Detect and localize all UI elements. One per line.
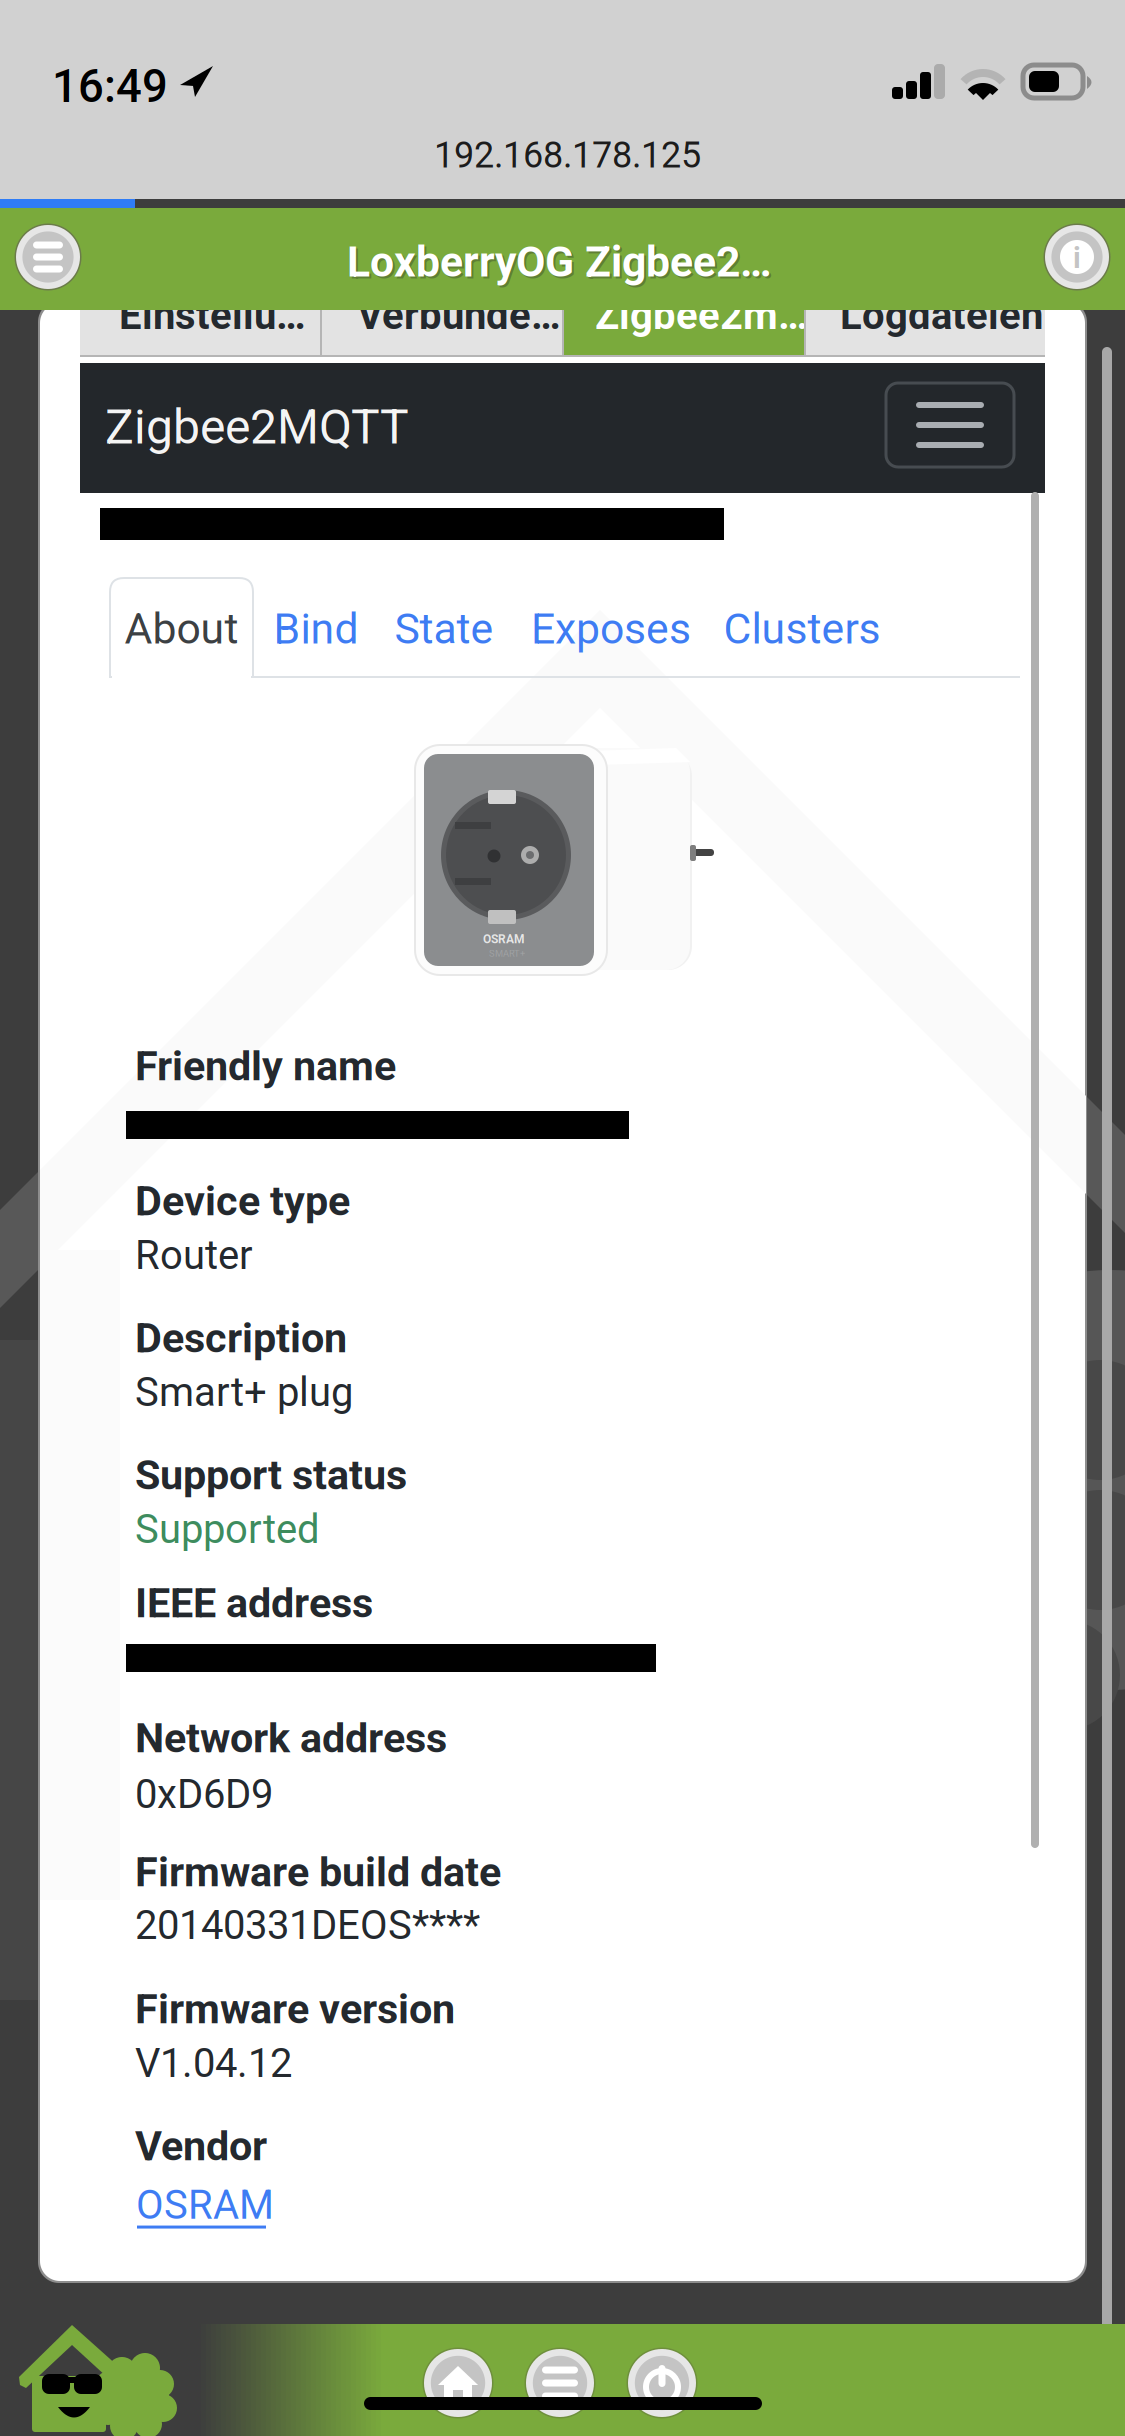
staticText: Firmware version (135, 1985, 455, 2033)
staticText: Firmware build date (135, 1848, 501, 1896)
button[interactable]: Bind (259, 580, 373, 678)
staticText: Logdateien (840, 292, 1043, 339)
button[interactable]: Verbunde… (322, 285, 562, 357)
staticText: About (124, 604, 238, 654)
staticText: Bind (273, 604, 358, 654)
staticText: Exposes (531, 604, 691, 654)
staticText: Clusters (723, 604, 880, 654)
staticText: SMART+ (489, 948, 525, 959)
staticText: Network address (135, 1714, 447, 1762)
staticText: LoxberryOG Zigbee2… (347, 237, 772, 287)
button[interactable]: Einstellu… (80, 285, 320, 357)
staticText: Supported (135, 1506, 320, 1553)
button[interactable]: Power (625, 2346, 699, 2420)
staticText: Zigbee2MQTT (105, 399, 409, 455)
button[interactable]: Clusters (716, 580, 888, 678)
staticText: State (394, 604, 493, 654)
staticText: Einstellu… (119, 292, 306, 339)
staticText: Vendor (135, 2122, 267, 2170)
staticText: LoxberryOG Zigbee2… (349, 239, 774, 289)
staticText: Device type (135, 1177, 350, 1225)
button[interactable]: Logdateien (806, 285, 1045, 357)
staticText: V1.04.12 (135, 2040, 292, 2087)
staticText: IEEE address (135, 1579, 373, 1627)
button[interactable]: Zigbee2m… (564, 285, 804, 357)
button[interactable]: Info (1042, 222, 1112, 292)
staticText: Friendly name (135, 1042, 396, 1090)
staticText: i (1073, 241, 1081, 275)
button[interactable]: Menu (523, 2346, 597, 2420)
staticText: Support status (135, 1451, 407, 1499)
button[interactable]: Home (421, 2346, 495, 2420)
staticText: Zigbee2m… (595, 292, 808, 339)
button[interactable]: About (110, 580, 253, 678)
staticText: Smart+ plug (135, 1369, 353, 1416)
button[interactable]: OSRAM (133, 2173, 273, 2229)
button[interactable]: Open navigation (886, 383, 1014, 467)
staticText: Description (135, 1314, 347, 1362)
staticText: 20140331DEOS**** (135, 1902, 480, 1949)
staticText: 0xD6D9 (135, 1771, 273, 1818)
button[interactable]: Menu (13, 222, 83, 292)
staticText: OSRAM (483, 932, 525, 946)
staticText: OSRAM (136, 2182, 274, 2228)
staticText: 192.168.178.125 (434, 134, 701, 176)
staticText: Router (135, 1232, 253, 1279)
button[interactable]: State (379, 580, 509, 678)
button[interactable]: Exposes (521, 580, 701, 678)
staticText: Verbunde… (357, 292, 561, 339)
staticText: 16:49 (52, 60, 168, 113)
